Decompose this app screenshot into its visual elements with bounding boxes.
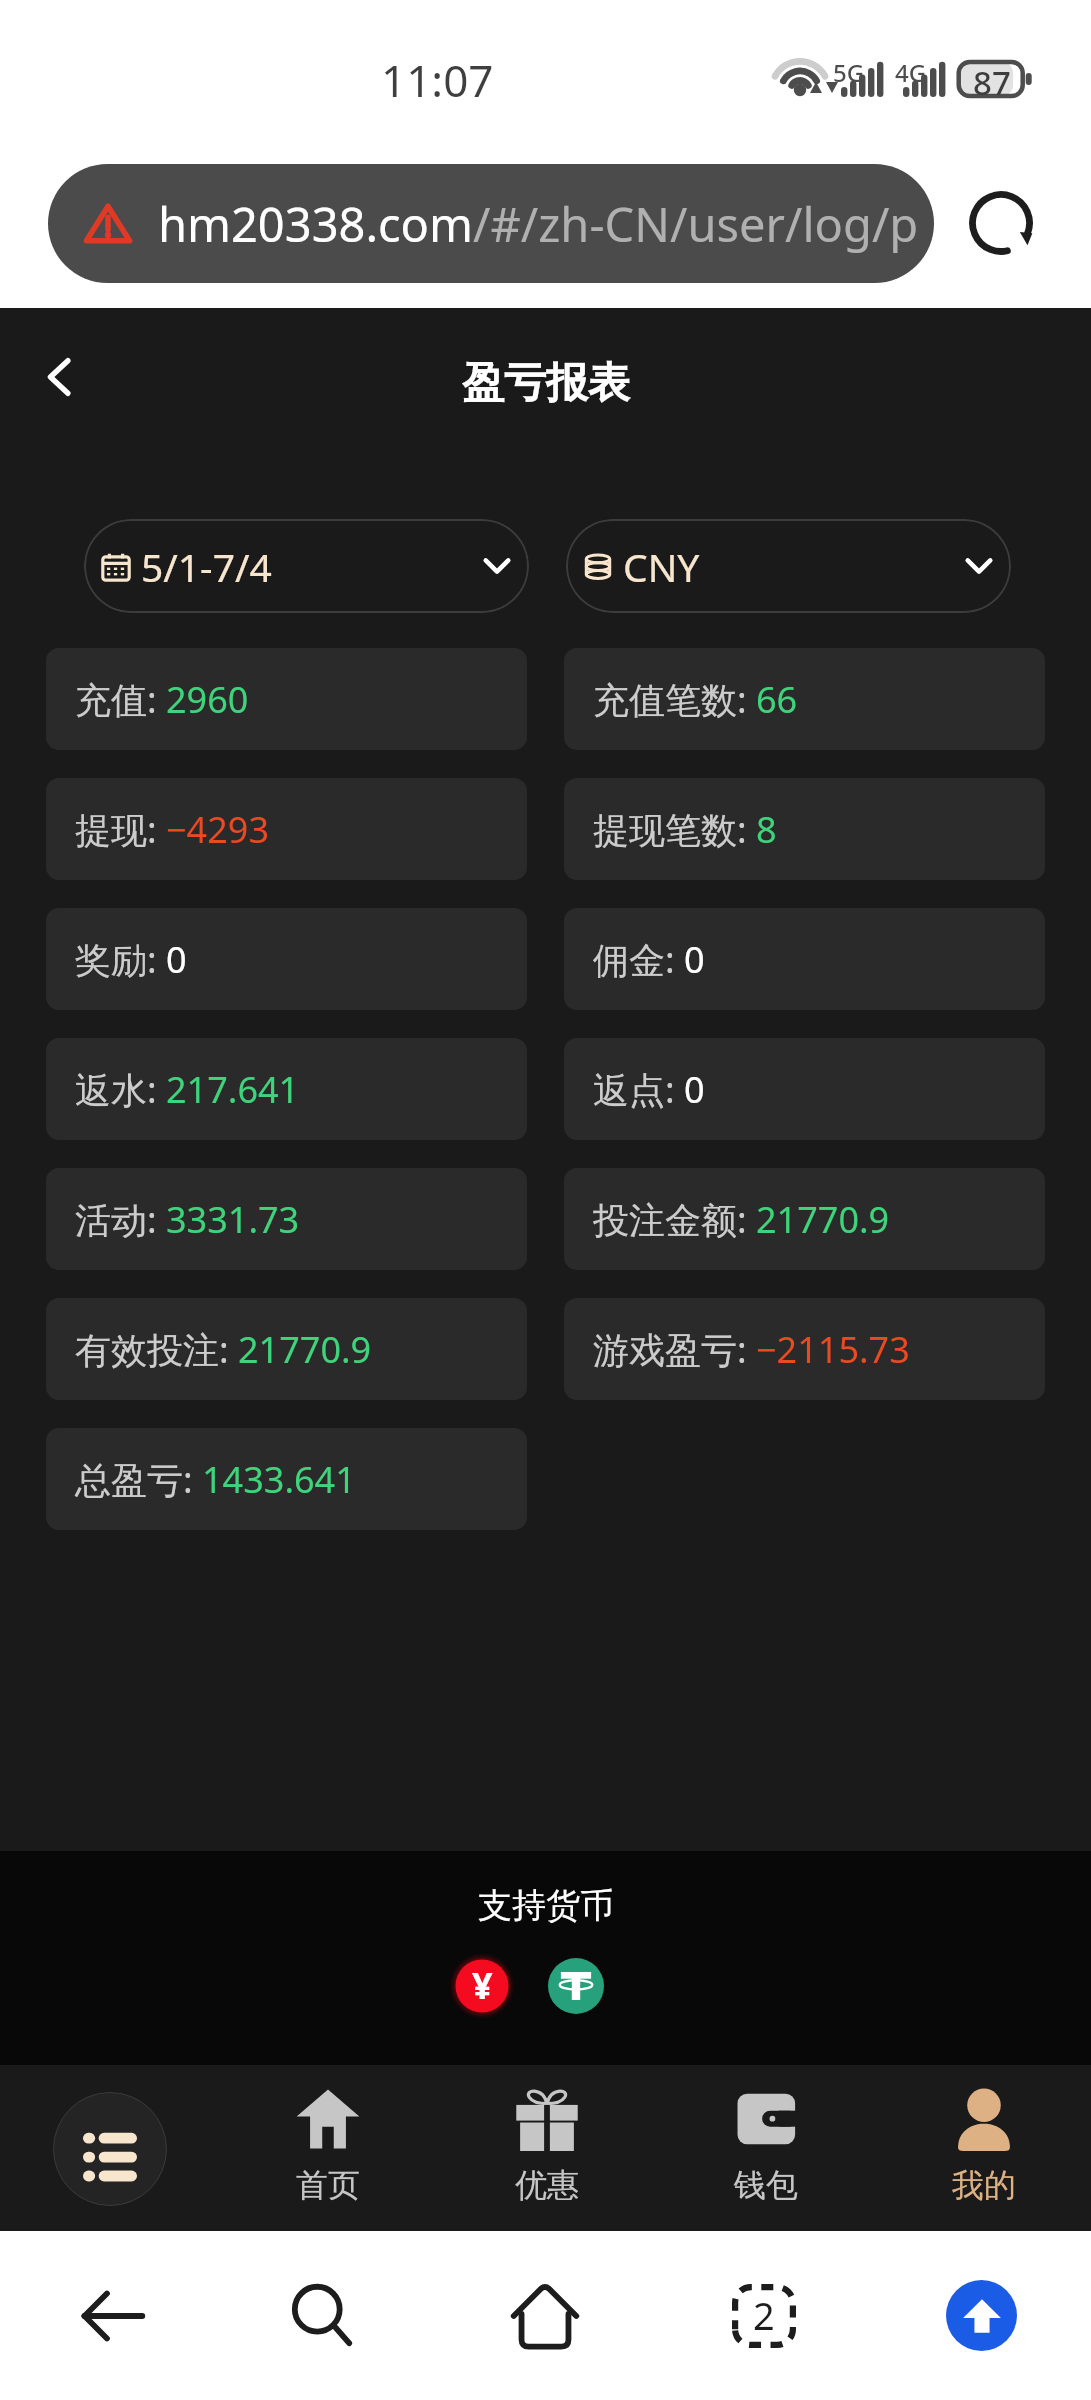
button[interactable]: 奖励: 0	[46, 908, 527, 1010]
button[interactable]: Search	[280, 2282, 364, 2350]
button[interactable]: 我的	[894, 2065, 1074, 2231]
button[interactable]: 提现: −4293	[46, 778, 527, 880]
button[interactable]: 提现笔数: 8	[564, 778, 1045, 880]
button[interactable]: 5/1-7/4	[84, 519, 529, 613]
button[interactable]: Back	[67, 2282, 151, 2350]
staticText: 我的	[952, 2165, 1016, 2205]
button[interactable]: 优惠	[457, 2065, 637, 2231]
button[interactable]: 返水: 217.641	[46, 1038, 527, 1140]
staticText: CNY	[623, 540, 700, 593]
button[interactable]: 投注金额: 21770.9	[564, 1168, 1045, 1270]
staticText: 提现笔数: 8	[593, 805, 777, 854]
staticText: 游戏盈亏: −2115.73	[593, 1325, 910, 1374]
button[interactable]: 充值: 2960	[46, 648, 527, 750]
staticText: 充值笔数: 66	[593, 675, 798, 724]
staticText: 佣金: 0	[593, 935, 705, 984]
staticText: ¥	[472, 1961, 493, 2010]
button[interactable]: CNY	[566, 519, 1011, 613]
staticText: 4G	[895, 56, 927, 89]
button[interactable]: 返点: 0	[564, 1038, 1045, 1140]
staticText: 首页	[296, 2165, 360, 2205]
button[interactable]: Back	[20, 339, 96, 415]
staticText: 钱包	[734, 2165, 798, 2205]
staticText: 盈亏报表	[462, 357, 630, 410]
button[interactable]: 游戏盈亏: −2115.73	[564, 1298, 1045, 1400]
staticText: 2	[753, 2289, 775, 2341]
staticText: 投注金额: 21770.9	[593, 1195, 890, 1244]
button[interactable]: Tabs	[722, 2282, 806, 2350]
button[interactable]: 充值笔数: 66	[564, 648, 1045, 750]
button[interactable]: CNY	[448, 1952, 516, 2020]
staticText: 优惠	[515, 2165, 579, 2205]
staticText: 奖励: 0	[75, 935, 187, 984]
button[interactable]: USDT	[548, 1958, 604, 2014]
staticText: 提现: −4293	[75, 805, 269, 854]
button[interactable]: 钱包	[676, 2065, 856, 2231]
staticText: 返水: 217.641	[75, 1065, 300, 1114]
staticText: 支持货币	[478, 1884, 614, 1927]
staticText: 有效投注: 21770.9	[75, 1325, 372, 1374]
button[interactable]: Scroll to top	[946, 2280, 1017, 2351]
staticText: 充值: 2960	[75, 675, 249, 724]
staticText: hm20338.com/#/zh-CN/user/log/p	[158, 192, 919, 256]
button[interactable]: 总盈亏: 1433.641	[46, 1428, 527, 1530]
button[interactable]: Home	[503, 2282, 587, 2350]
staticText: 返点: 0	[593, 1065, 705, 1114]
button[interactable]: 有效投注: 21770.9	[46, 1298, 527, 1400]
staticText: 5G	[833, 56, 865, 89]
button[interactable]: 活动: 3331.73	[46, 1168, 527, 1270]
staticText: 5/1-7/4	[141, 540, 272, 593]
staticText: 87	[973, 60, 1011, 105]
staticText: 11:07	[381, 50, 494, 110]
staticText: 活动: 3331.73	[75, 1195, 300, 1244]
button[interactable]: Menu	[53, 2092, 167, 2206]
button[interactable]: 佣金: 0	[564, 908, 1045, 1010]
button[interactable]: 首页	[238, 2065, 418, 2231]
staticText: 总盈亏: 1433.641	[75, 1455, 356, 1504]
button[interactable]: Reload	[962, 184, 1040, 262]
button[interactable]: hm20338.com/#/zh-CN/user/log/p	[48, 164, 934, 283]
